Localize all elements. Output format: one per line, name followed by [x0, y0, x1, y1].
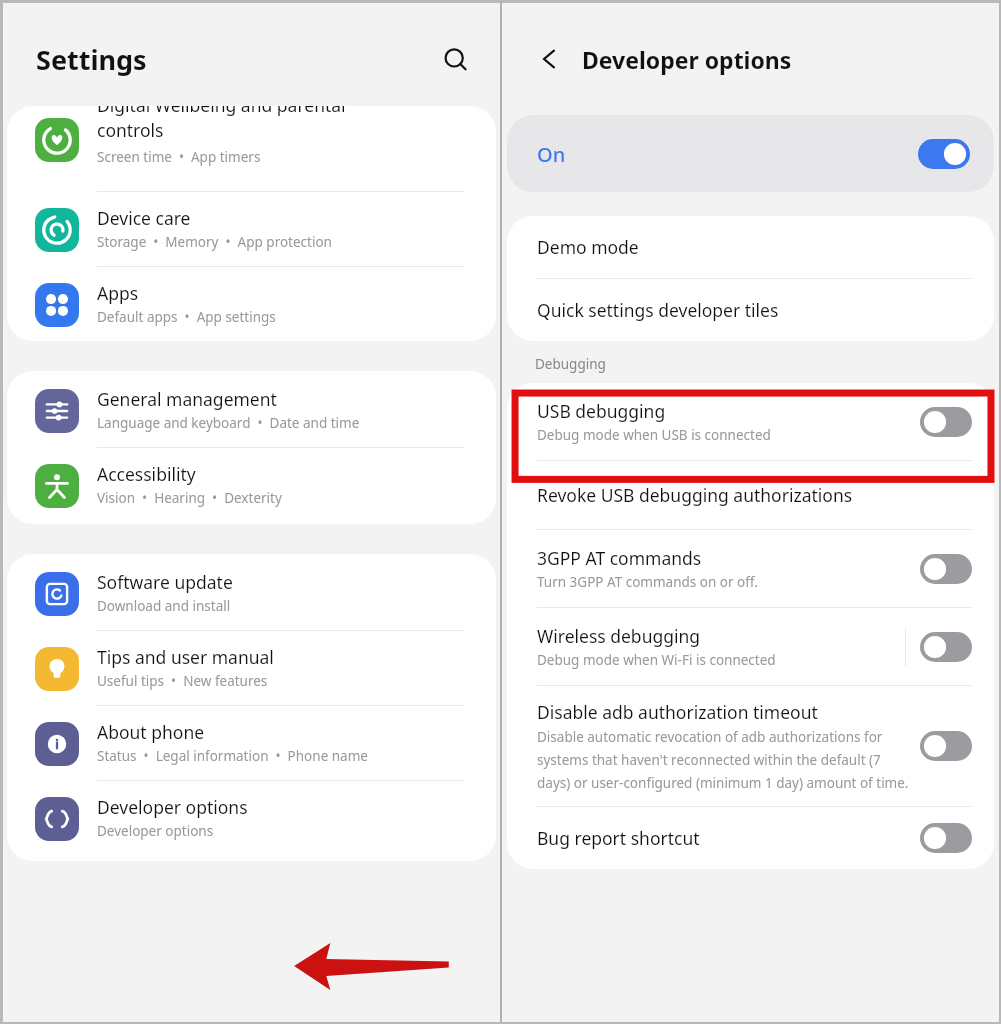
staticText: Debug mode when USB is connected [537, 426, 771, 444]
staticText: Bug report shortcut [537, 826, 700, 850]
staticText: Storage • Memory • App protection [97, 233, 332, 251]
button[interactable]: Apps [7, 267, 496, 341]
button[interactable]: Toggle on [918, 139, 970, 169]
staticText: Screen time • App timers [97, 148, 261, 166]
button[interactable]: Bug report shortcut [507, 807, 994, 869]
button[interactable]: Toggle off [920, 632, 972, 662]
button[interactable]: Software update [7, 554, 496, 630]
button[interactable]: About phone [7, 706, 496, 780]
button[interactable]: Search [434, 38, 478, 82]
button[interactable]: Toggle off [920, 407, 972, 437]
button[interactable]: On [507, 115, 994, 192]
staticText: Disable automatic revocation of adb auth… [537, 728, 910, 792]
button[interactable]: Toggle off [920, 823, 972, 853]
staticText: About phone [97, 720, 205, 744]
staticText: Software update [97, 570, 233, 594]
staticText: Developer options [97, 795, 248, 819]
button[interactable]: 3GPP AT commands [507, 530, 994, 607]
button[interactable]: Revoke USB debugging authorizations [507, 461, 994, 529]
button[interactable]: USB debugging [507, 383, 994, 460]
button[interactable]: Toggle off [920, 554, 972, 584]
staticText: Digital Wellbeing and parental controls [97, 106, 346, 143]
staticText: General management [97, 387, 277, 411]
staticText: USB debugging [537, 399, 666, 423]
staticText: Language and keyboard • Date and time [97, 414, 360, 432]
staticText: Default apps • App settings [97, 308, 276, 326]
staticText: Demo mode [537, 235, 639, 259]
button[interactable]: Quick settings developer tiles [507, 279, 994, 341]
staticText: Developer options [582, 44, 792, 75]
staticText: On [537, 141, 918, 168]
staticText: Status • Legal information • Phone name [97, 747, 368, 765]
staticText: Debugging [535, 355, 606, 373]
staticText: Revoke USB debugging authorizations [537, 483, 853, 507]
button[interactable]: Developer options [7, 781, 496, 861]
button[interactable]: Tips and user manual [7, 631, 496, 705]
button[interactable]: Accessibility [7, 448, 496, 524]
staticText: Vision • Hearing • Dexterity [97, 489, 282, 507]
button[interactable]: Wireless debugging [507, 608, 994, 685]
button[interactable]: Digital Wellbeing and parental controls [7, 106, 496, 191]
staticText: Disable adb authorization timeout [537, 700, 818, 724]
staticText: Developer options [97, 822, 214, 840]
button[interactable]: General management [7, 371, 496, 447]
staticText: 3GPP AT commands [537, 546, 702, 570]
button[interactable]: Back [530, 39, 570, 79]
staticText: Wireless debugging [537, 624, 701, 648]
staticText: Tips and user manual [97, 645, 274, 669]
button[interactable]: Device care [7, 192, 496, 266]
button[interactable]: Toggle off [920, 731, 972, 761]
staticText: Accessibility [97, 462, 196, 486]
staticText: Quick settings developer tiles [537, 298, 779, 322]
staticText: Debug mode when Wi-Fi is connected [537, 651, 776, 669]
button[interactable]: Demo mode [507, 216, 994, 278]
staticText: Device care [97, 206, 191, 230]
staticText: Download and install [97, 597, 231, 615]
button[interactable]: Disable adb authorization timeout [507, 686, 994, 806]
staticText: Apps [97, 281, 139, 305]
staticText: Settings [36, 41, 147, 78]
staticText: Turn 3GPP AT commands on or off. [537, 573, 758, 591]
staticText: Useful tips • New features [97, 672, 268, 690]
